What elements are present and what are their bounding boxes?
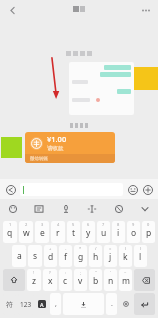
staticText: q	[7, 227, 13, 239]
staticText: (	[125, 246, 127, 251]
button[interactable]: :	[59, 269, 72, 291]
button[interactable]: 7	[97, 221, 110, 243]
button[interactable]: a	[12, 245, 26, 267]
button[interactable]: Settings	[112, 202, 126, 216]
staticText: h	[93, 251, 99, 263]
staticText: )	[140, 246, 142, 251]
button[interactable]: 4	[51, 221, 65, 243]
button[interactable]: 2	[19, 221, 33, 243]
staticText: '	[110, 270, 111, 275]
button[interactable]: Move cursor	[85, 202, 99, 216]
staticText: 9	[132, 222, 135, 227]
button[interactable]: A	[38, 300, 46, 308]
button[interactable]: More	[141, 183, 154, 196]
button[interactable]: Shift	[3, 269, 25, 291]
staticText: j	[109, 251, 112, 263]
staticText: ,	[55, 299, 57, 309]
button[interactable]: Voice input	[119, 293, 132, 315]
staticText: "	[95, 270, 97, 275]
button[interactable]: ?	[43, 269, 57, 291]
button[interactable]: ;	[74, 269, 87, 291]
staticText: 123	[20, 300, 32, 309]
staticText: l	[139, 251, 142, 263]
button[interactable]: *	[74, 245, 87, 267]
button[interactable]: 5	[67, 221, 80, 243]
staticText: ?	[49, 270, 51, 275]
button[interactable]: 8	[112, 221, 125, 243]
staticText: =	[109, 246, 112, 251]
staticText: ;	[80, 270, 82, 275]
button[interactable]: 6	[82, 221, 95, 243]
button[interactable]: 123	[18, 293, 34, 315]
staticText: 5	[72, 222, 75, 227]
staticText: A	[40, 301, 44, 308]
staticText: +	[49, 246, 52, 251]
staticText: v	[78, 275, 83, 287]
staticText: 6	[87, 222, 90, 227]
button[interactable]: )	[134, 245, 147, 267]
button[interactable]	[20, 183, 123, 196]
staticText: r	[56, 227, 60, 239]
staticText: i	[117, 227, 120, 239]
button[interactable]: "	[89, 269, 102, 291]
button[interactable]: 9	[127, 221, 140, 243]
staticText: m	[122, 275, 130, 287]
button[interactable]: .	[106, 293, 117, 315]
button[interactable]: Space	[63, 293, 104, 315]
button[interactable]	[69, 62, 134, 115]
button[interactable]: 符	[3, 293, 16, 315]
staticText: 符	[6, 300, 13, 309]
staticText: ¥1.00	[47, 134, 67, 144]
staticText: o	[131, 227, 137, 239]
button[interactable]: '	[104, 269, 117, 291]
staticText: y	[86, 227, 91, 239]
button[interactable]: ¥1.00	[25, 132, 115, 163]
button[interactable]: -	[59, 245, 72, 267]
staticText: 7	[102, 222, 105, 227]
staticText: 微信转账	[30, 156, 48, 162]
button[interactable]: More options	[139, 3, 153, 17]
staticText: d	[48, 251, 54, 263]
button[interactable]: Voice input	[4, 183, 17, 196]
staticText: p	[146, 227, 152, 239]
button[interactable]: Backspace	[134, 269, 155, 291]
staticText: n	[108, 275, 114, 287]
staticText: .	[111, 299, 113, 309]
button[interactable]: =	[104, 245, 117, 267]
button[interactable]: Back	[4, 2, 20, 18]
button[interactable]: (	[119, 245, 132, 267]
button[interactable]: 1	[3, 221, 17, 243]
button[interactable]: Hide keyboard	[138, 202, 152, 216]
staticText: 0	[147, 222, 150, 227]
staticText: 2	[25, 222, 28, 227]
button[interactable]: 0	[142, 221, 155, 243]
button[interactable]: Emoji keyboard	[6, 202, 20, 216]
staticText: s	[33, 250, 38, 262]
button[interactable]: s	[28, 245, 42, 267]
button[interactable]: Clipboard	[32, 202, 46, 216]
staticText: /	[95, 246, 97, 251]
button[interactable]: Emoji	[126, 183, 139, 196]
staticText: ~	[124, 270, 127, 275]
staticText: z	[32, 275, 36, 287]
staticText: -	[65, 246, 67, 251]
button[interactable]: ,	[50, 293, 61, 315]
staticText: a	[17, 250, 22, 262]
staticText: 请收款	[47, 145, 64, 152]
staticText: w	[23, 227, 30, 239]
staticText: k	[123, 251, 128, 263]
button[interactable]: Voice	[59, 202, 73, 216]
staticText: *	[79, 246, 82, 251]
button[interactable]: ~	[119, 269, 132, 291]
staticText: x	[48, 275, 53, 287]
staticText: 1	[9, 222, 12, 227]
button[interactable]: 3	[35, 221, 49, 243]
button[interactable]: +	[44, 245, 57, 267]
button[interactable]: /	[89, 245, 102, 267]
button[interactable]: Enter	[134, 293, 155, 315]
staticText: g	[78, 251, 84, 263]
button[interactable]: !	[27, 269, 41, 291]
staticText: !	[33, 270, 35, 275]
